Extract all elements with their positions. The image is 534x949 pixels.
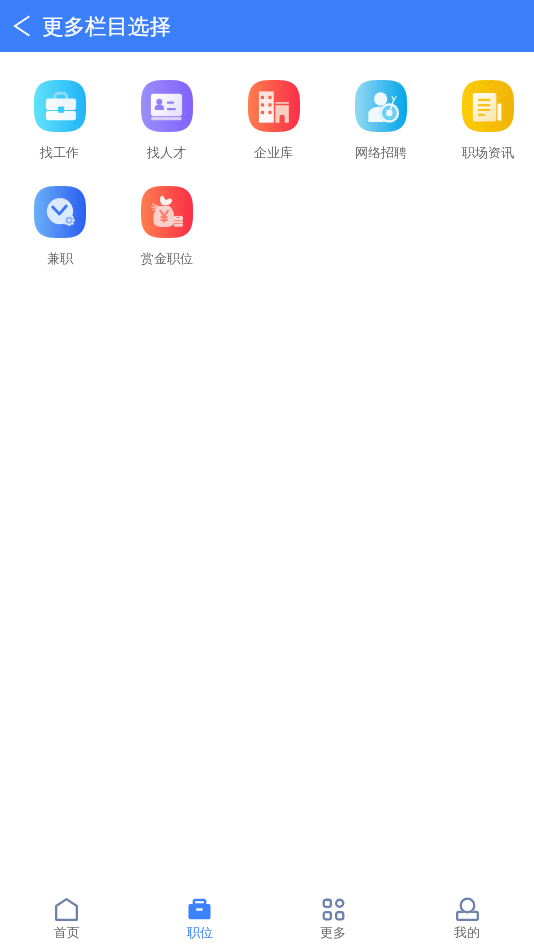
button[interactable]: 更多 bbox=[266, 881, 400, 940]
button[interactable]: 找人才 bbox=[113, 80, 220, 160]
button[interactable]: 我的 bbox=[400, 881, 534, 940]
button[interactable]: 兼职 bbox=[6, 186, 113, 266]
button[interactable]: 职位 bbox=[133, 881, 266, 940]
button[interactable]: 找工作 bbox=[6, 80, 113, 160]
staticText: 更多 bbox=[320, 924, 346, 940]
button[interactable]: 首页 bbox=[0, 881, 133, 940]
button[interactable]: 职场资讯 bbox=[434, 80, 534, 160]
staticText: 职场资讯 bbox=[462, 144, 514, 160]
staticText: 赏金职位 bbox=[141, 250, 193, 266]
button[interactable]: 网络招聘 bbox=[327, 80, 434, 160]
staticText: 更多栏目选择 bbox=[42, 13, 171, 40]
staticText: 首页 bbox=[54, 924, 80, 940]
staticText: 找工作 bbox=[40, 144, 79, 160]
button[interactable]: Back bbox=[3, 6, 43, 46]
button[interactable]: 赏金职位 bbox=[113, 186, 220, 266]
staticText: 企业库 bbox=[254, 144, 293, 160]
staticText: 兼职 bbox=[47, 250, 73, 266]
button[interactable]: 企业库 bbox=[220, 80, 327, 160]
staticText: 网络招聘 bbox=[355, 144, 407, 160]
staticText: 职位 bbox=[187, 924, 213, 940]
staticText: 我的 bbox=[454, 924, 480, 940]
staticText: 找人才 bbox=[147, 144, 186, 160]
